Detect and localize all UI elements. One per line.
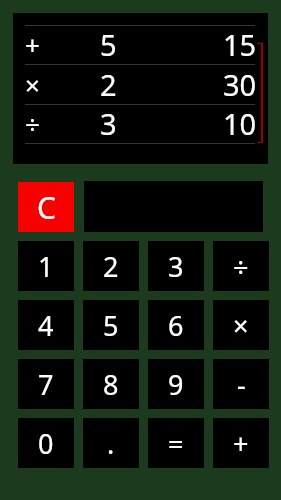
staticText: 5: [100, 25, 117, 64]
staticText: ×: [233, 307, 249, 344]
staticText: 4: [38, 307, 54, 344]
button[interactable]: 4: [18, 300, 74, 350]
staticText: ÷: [25, 106, 40, 141]
staticText: 6: [168, 307, 184, 344]
staticText: 10: [223, 104, 257, 143]
staticText: 7: [38, 366, 54, 403]
button[interactable]: ×: [213, 300, 269, 350]
button[interactable]: 2: [83, 241, 139, 291]
button[interactable]: .: [83, 418, 139, 468]
button[interactable]: 7: [18, 359, 74, 409]
staticText: 1: [38, 248, 54, 285]
staticText: +: [25, 27, 40, 62]
staticText: 2: [103, 248, 119, 285]
button[interactable]: 9: [148, 359, 204, 409]
button[interactable]: ÷: [213, 241, 269, 291]
button[interactable]: 0: [18, 418, 74, 468]
staticText: +: [233, 425, 249, 462]
button[interactable]: 8: [83, 359, 139, 409]
button[interactable]: C: [18, 182, 74, 232]
staticText: 5: [103, 307, 119, 344]
staticText: C: [37, 187, 56, 228]
staticText: 9: [168, 366, 184, 403]
staticText: 0: [38, 425, 54, 462]
button[interactable]: 5: [83, 300, 139, 350]
button[interactable]: 3: [148, 241, 204, 291]
staticText: 8: [103, 366, 119, 403]
staticText: 15: [223, 25, 257, 64]
staticText: 2: [100, 65, 117, 104]
staticText: ×: [25, 67, 40, 102]
button[interactable]: 1: [18, 241, 74, 291]
staticText: ÷: [233, 248, 249, 285]
staticText: 30: [223, 65, 257, 104]
staticText: -: [237, 366, 246, 403]
staticText: =: [168, 425, 184, 462]
button[interactable]: 6: [148, 300, 204, 350]
button[interactable]: -: [213, 359, 269, 409]
staticText: 3: [100, 104, 117, 143]
staticText: 3: [168, 248, 184, 285]
button[interactable]: =: [148, 418, 204, 468]
button[interactable]: +: [213, 418, 269, 468]
staticText: .: [107, 425, 115, 462]
